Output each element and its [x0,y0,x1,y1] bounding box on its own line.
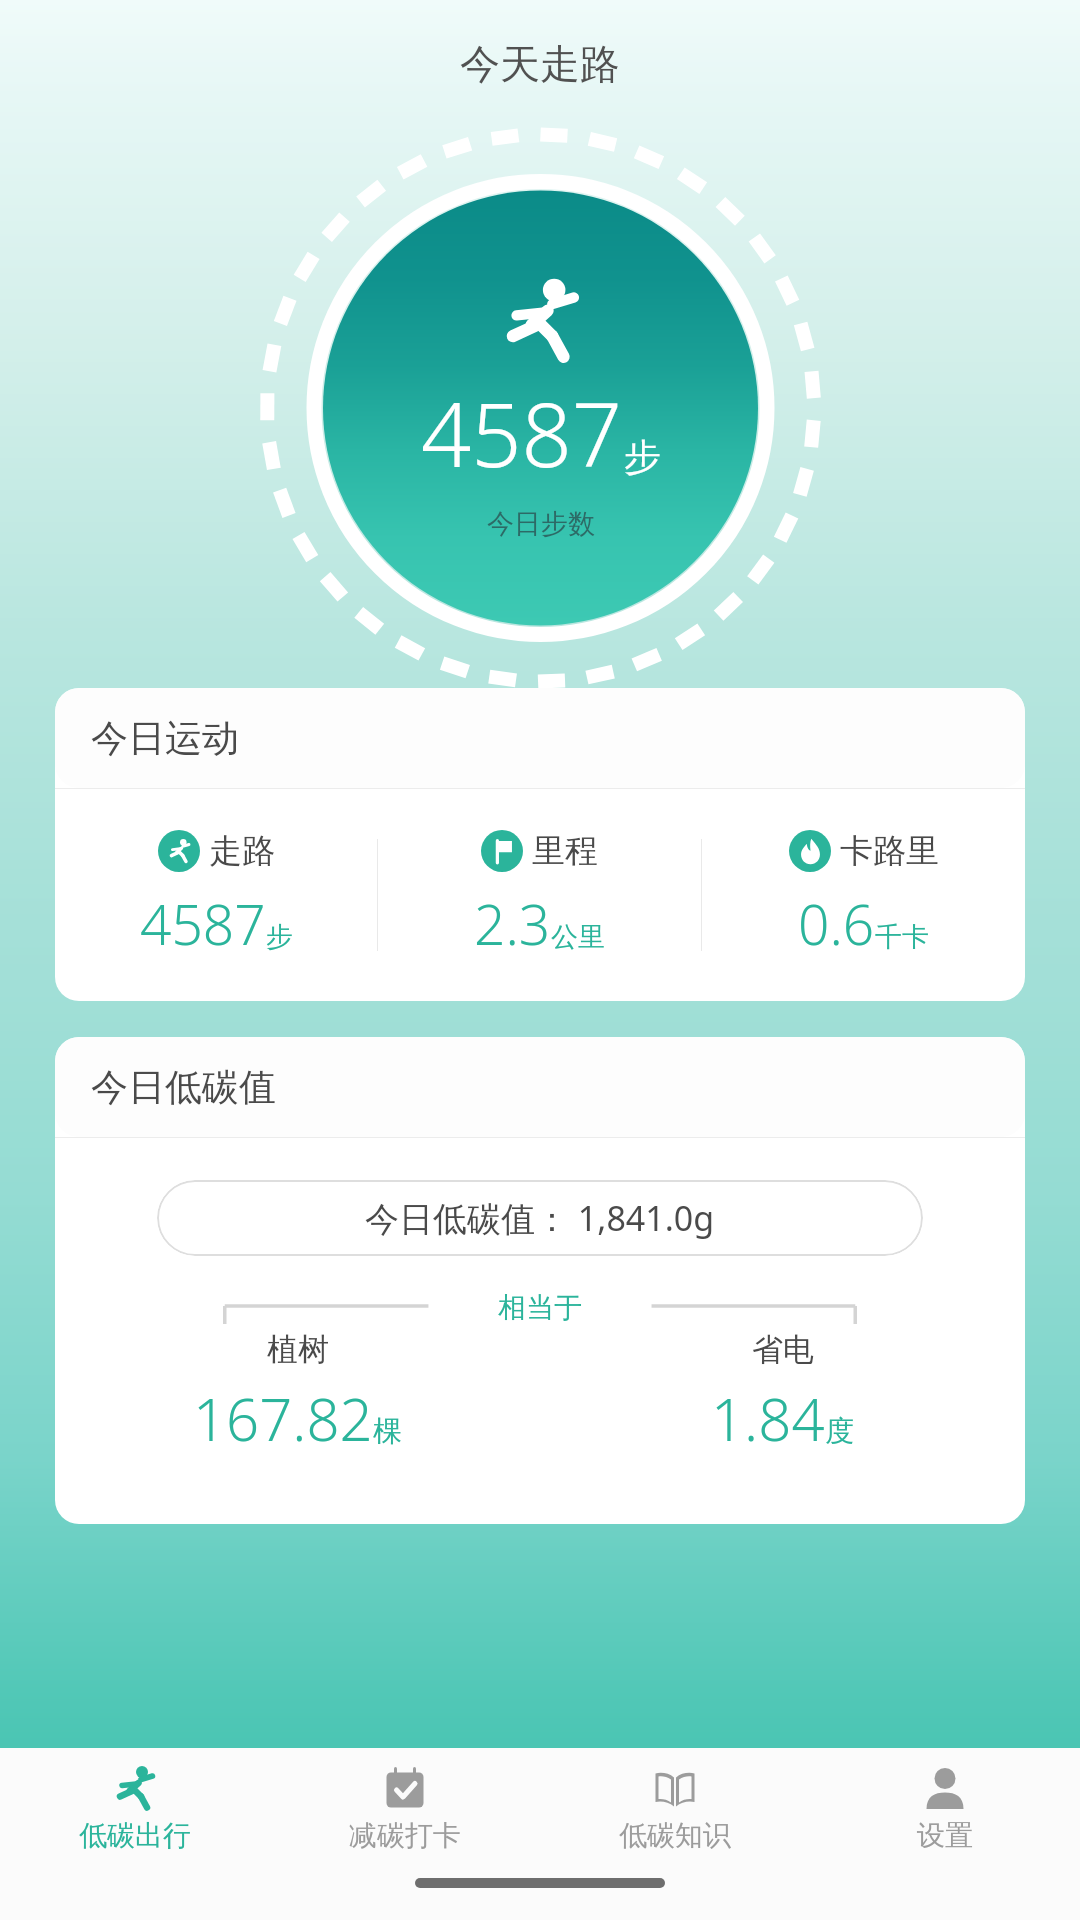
button[interactable]: 里程 [378,830,701,961]
staticText: 省电 [752,1330,814,1369]
button[interactable]: 卡路里 [702,830,1025,961]
staticText: 4587 [421,373,622,493]
staticText: 0.6 [798,886,875,961]
staticText: 里程 [532,830,598,872]
staticText: 步 [266,920,293,954]
other: 低碳知识 [650,1764,700,1814]
staticText: 低碳出行 [79,1818,191,1853]
button[interactable]: 低碳知识 [540,1748,810,1878]
staticText: 步 [624,434,661,481]
staticText: 今日步数 [487,507,595,541]
staticText: 低碳知识 [619,1818,731,1853]
staticText: 今日低碳值 [91,1064,276,1111]
other: 减碳打卡 [380,1764,430,1814]
staticText: 今日运动 [91,715,239,762]
staticText: 千卡 [875,920,929,954]
button[interactable]: 低碳出行 [0,1748,270,1878]
staticText: 1.84 [711,1379,825,1458]
button[interactable]: 今日低碳值： 1,841.0g [157,1180,923,1256]
staticText: 今日低碳值： 1,841.0g [365,1195,715,1241]
staticText: 卡路里 [840,830,939,872]
staticText: 相当于 [498,1290,582,1325]
staticText: 走路 [209,830,275,872]
staticText: 2.3 [474,886,551,961]
other: 设置 [920,1764,970,1814]
button[interactable]: 减碳打卡 [270,1748,540,1878]
staticText: 公里 [551,920,605,954]
staticText: 度 [825,1413,854,1450]
staticText: 167.82 [193,1379,373,1458]
staticText: 棵 [373,1413,402,1450]
staticText: 减碳打卡 [349,1818,461,1853]
other: 低碳出行 [110,1764,160,1814]
button[interactable]: 设置 [810,1748,1080,1878]
button[interactable]: 走路 [55,830,377,961]
staticText: 今天走路 [460,39,620,89]
staticText: 设置 [917,1818,973,1853]
staticText: 4587 [140,886,266,961]
staticText: 植树 [267,1330,329,1369]
